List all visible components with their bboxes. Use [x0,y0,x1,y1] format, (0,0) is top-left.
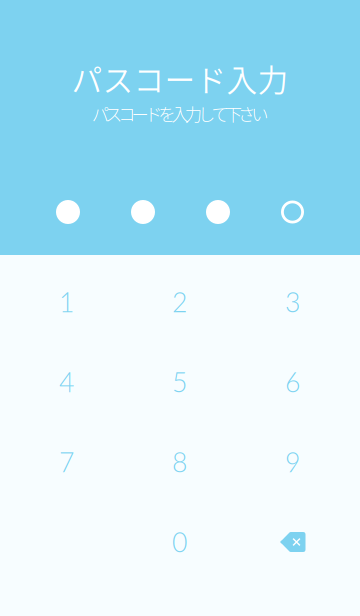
button[interactable]: 3 [236,262,349,342]
staticText: 5 [172,366,187,398]
staticText: 0 [172,526,187,558]
staticText: 7 [59,446,74,478]
staticText: 8 [172,446,187,478]
button[interactable]: 0 [123,502,236,582]
button[interactable]: Delete [236,502,349,582]
button[interactable]: 4 [10,342,123,422]
staticText: 1 [59,286,74,318]
staticText: 9 [285,446,300,478]
staticText: 3 [285,286,300,318]
button[interactable]: 6 [236,342,349,422]
staticText: 6 [285,366,300,398]
button[interactable]: 1 [10,262,123,342]
button[interactable]: 9 [236,422,349,502]
button[interactable]: 7 [10,422,123,502]
button[interactable]: 5 [123,342,236,422]
staticText: パスコードを入力して下さい [92,101,268,126]
button[interactable]: 8 [123,422,236,502]
staticText: 2 [172,286,187,318]
button[interactable]: 2 [123,262,236,342]
staticText: 4 [59,366,74,398]
staticText: パスコード入力 [71,56,288,100]
